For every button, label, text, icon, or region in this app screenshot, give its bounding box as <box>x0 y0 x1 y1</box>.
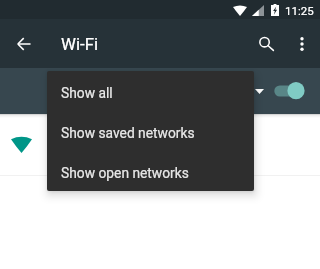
staticText: Wi-Fi <box>61 34 98 54</box>
staticText: Show saved networks <box>61 125 195 141</box>
button[interactable] <box>0 118 320 175</box>
staticText: Show all <box>61 85 113 101</box>
button[interactable]: Show saved networks <box>47 111 254 151</box>
button[interactable]: Show open networks <box>47 151 254 191</box>
button[interactable]: Navigate up <box>8 28 40 60</box>
button[interactable]: Show all <box>47 71 254 111</box>
staticText: Show open networks <box>61 165 189 181</box>
button[interactable]: Search <box>249 26 284 61</box>
button[interactable]: More options <box>286 28 318 60</box>
button[interactable]: Wi-Fi on <box>272 74 308 108</box>
button[interactable]: Filter <box>247 79 271 103</box>
button[interactable] <box>0 176 320 268</box>
staticText: 11:25 <box>285 4 314 17</box>
